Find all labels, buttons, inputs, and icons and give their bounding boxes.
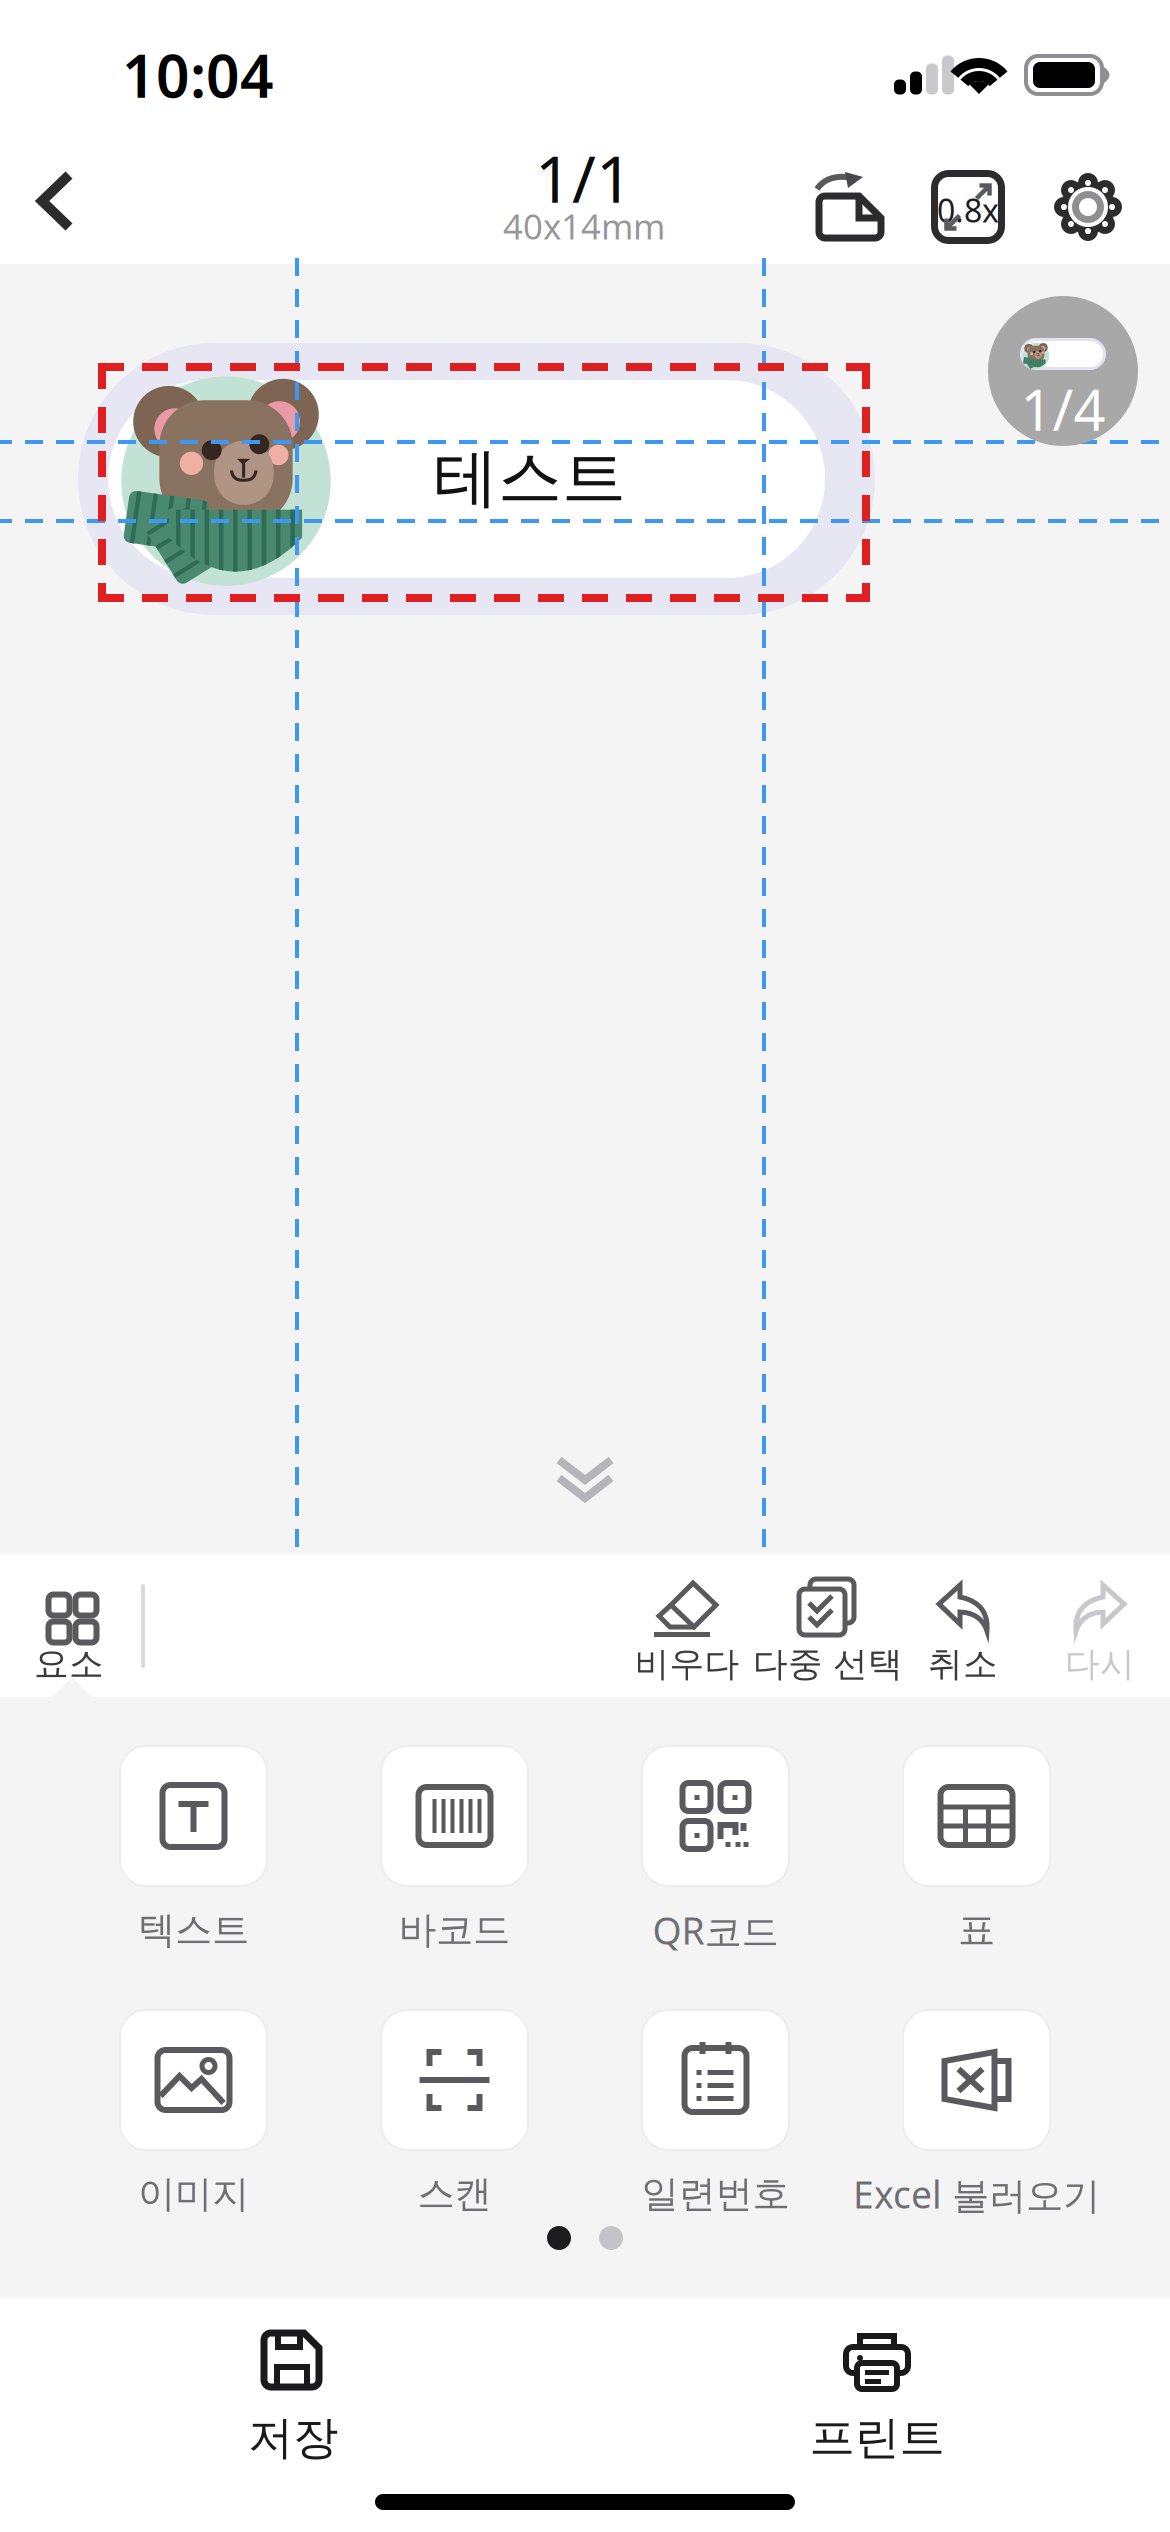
staticText: 비우다 xyxy=(634,1643,739,1685)
staticText: 일련번호 xyxy=(641,2171,789,2217)
staticText: 1/4 xyxy=(1020,372,1105,446)
staticText: 이미지 xyxy=(138,2171,249,2217)
button[interactable]: 일련번호 xyxy=(585,2010,846,2216)
button[interactable]: 다중 선택 xyxy=(743,1554,913,1697)
button[interactable]: 스캔 xyxy=(324,2010,585,2216)
staticText: 취소 xyxy=(928,1643,998,1685)
button[interactable]: Rotate page xyxy=(802,150,898,264)
staticText: 요소 xyxy=(34,1643,104,1685)
button[interactable]: Back xyxy=(8,144,104,258)
staticText: 텍스트 xyxy=(138,1907,249,1953)
staticText: QR코드 xyxy=(652,1905,778,1955)
button[interactable]: 이미지 xyxy=(63,2010,324,2216)
staticText: 바코드 xyxy=(399,1907,510,1953)
button[interactable]: Excel 불러오기 xyxy=(846,2010,1107,2216)
staticText: 다중 선택 xyxy=(753,1643,903,1685)
staticText: 다시 xyxy=(1065,1643,1135,1685)
staticText: 프린트 xyxy=(809,2410,944,2466)
button[interactable]: Settings xyxy=(1040,150,1136,264)
staticText: 40x14mm xyxy=(503,203,665,249)
button[interactable]: 바코드 xyxy=(324,1746,585,1952)
staticText: 저장 xyxy=(248,2410,338,2466)
staticText: 표 xyxy=(958,1907,995,1953)
staticText: 스캔 xyxy=(417,2171,491,2217)
button[interactable]: QR코드 xyxy=(585,1746,846,1952)
button[interactable]: 취소 xyxy=(917,1554,1009,1697)
button[interactable]: 비우다 xyxy=(625,1554,749,1697)
button[interactable]: 요소 xyxy=(14,1554,124,1697)
button[interactable]: 프린트 xyxy=(782,2298,972,2478)
button[interactable]: 저장 xyxy=(198,2298,388,2478)
button[interactable]: Zoom level 0.8x xyxy=(920,150,1016,264)
staticText: Excel 불러오기 xyxy=(853,2169,1100,2219)
button[interactable]: Page 1 of 4 xyxy=(988,296,1138,446)
staticText: 10:04 xyxy=(122,36,274,114)
staticText: 테스트 xyxy=(434,439,626,517)
button[interactable]: 텍스트 xyxy=(63,1746,324,1952)
staticText: 1/1 xyxy=(535,135,633,220)
button[interactable]: 표 xyxy=(846,1746,1107,1952)
button[interactable]: 다시 xyxy=(1054,1554,1146,1697)
staticText: 0.8x xyxy=(937,189,999,231)
